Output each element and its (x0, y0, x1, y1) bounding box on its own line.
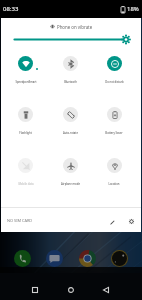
button[interactable]: Camera (109, 248, 129, 268)
staticText: Battery Saver (105, 131, 123, 135)
staticText: Phone on vibrate (57, 24, 93, 30)
button[interactable]: Messages (44, 248, 64, 268)
button[interactable]: SpeedportSmart (3, 56, 48, 88)
staticText: Do not disturb (105, 80, 124, 84)
staticText: Flashlight (19, 131, 32, 135)
button[interactable]: Back (98, 282, 114, 298)
button[interactable]: Battery Saver (92, 107, 136, 139)
staticText: Location (108, 182, 120, 186)
staticText: SpeedportSmart (15, 80, 37, 84)
button[interactable]: Flashlight (3, 107, 48, 139)
button[interactable]: Home (63, 282, 79, 298)
button[interactable]: Airplane mode (48, 158, 92, 190)
button[interactable]: Phone (12, 248, 32, 268)
staticText: NO SIM CARD (7, 218, 33, 223)
button[interactable]: Do not disturb (92, 56, 136, 88)
staticText: Bluetooth (64, 80, 77, 84)
staticText: Airplane mode (61, 182, 80, 186)
staticText: Auto-rotate (63, 131, 78, 135)
button[interactable]: Auto-rotate (48, 107, 92, 139)
staticText: 08:33 (3, 5, 19, 13)
button[interactable]: Chrome (77, 248, 97, 268)
staticText: Mobile data (18, 182, 34, 186)
button[interactable]: Settings (123, 213, 139, 229)
button[interactable]: Edit tiles (104, 214, 120, 230)
button[interactable]: Bluetooth (48, 56, 92, 88)
button[interactable]: Location (92, 158, 136, 190)
staticText: 18% (127, 5, 139, 13)
button[interactable]: Mobile data (3, 158, 48, 190)
button[interactable] (1, 33, 141, 46)
button[interactable]: Recents (27, 282, 43, 298)
